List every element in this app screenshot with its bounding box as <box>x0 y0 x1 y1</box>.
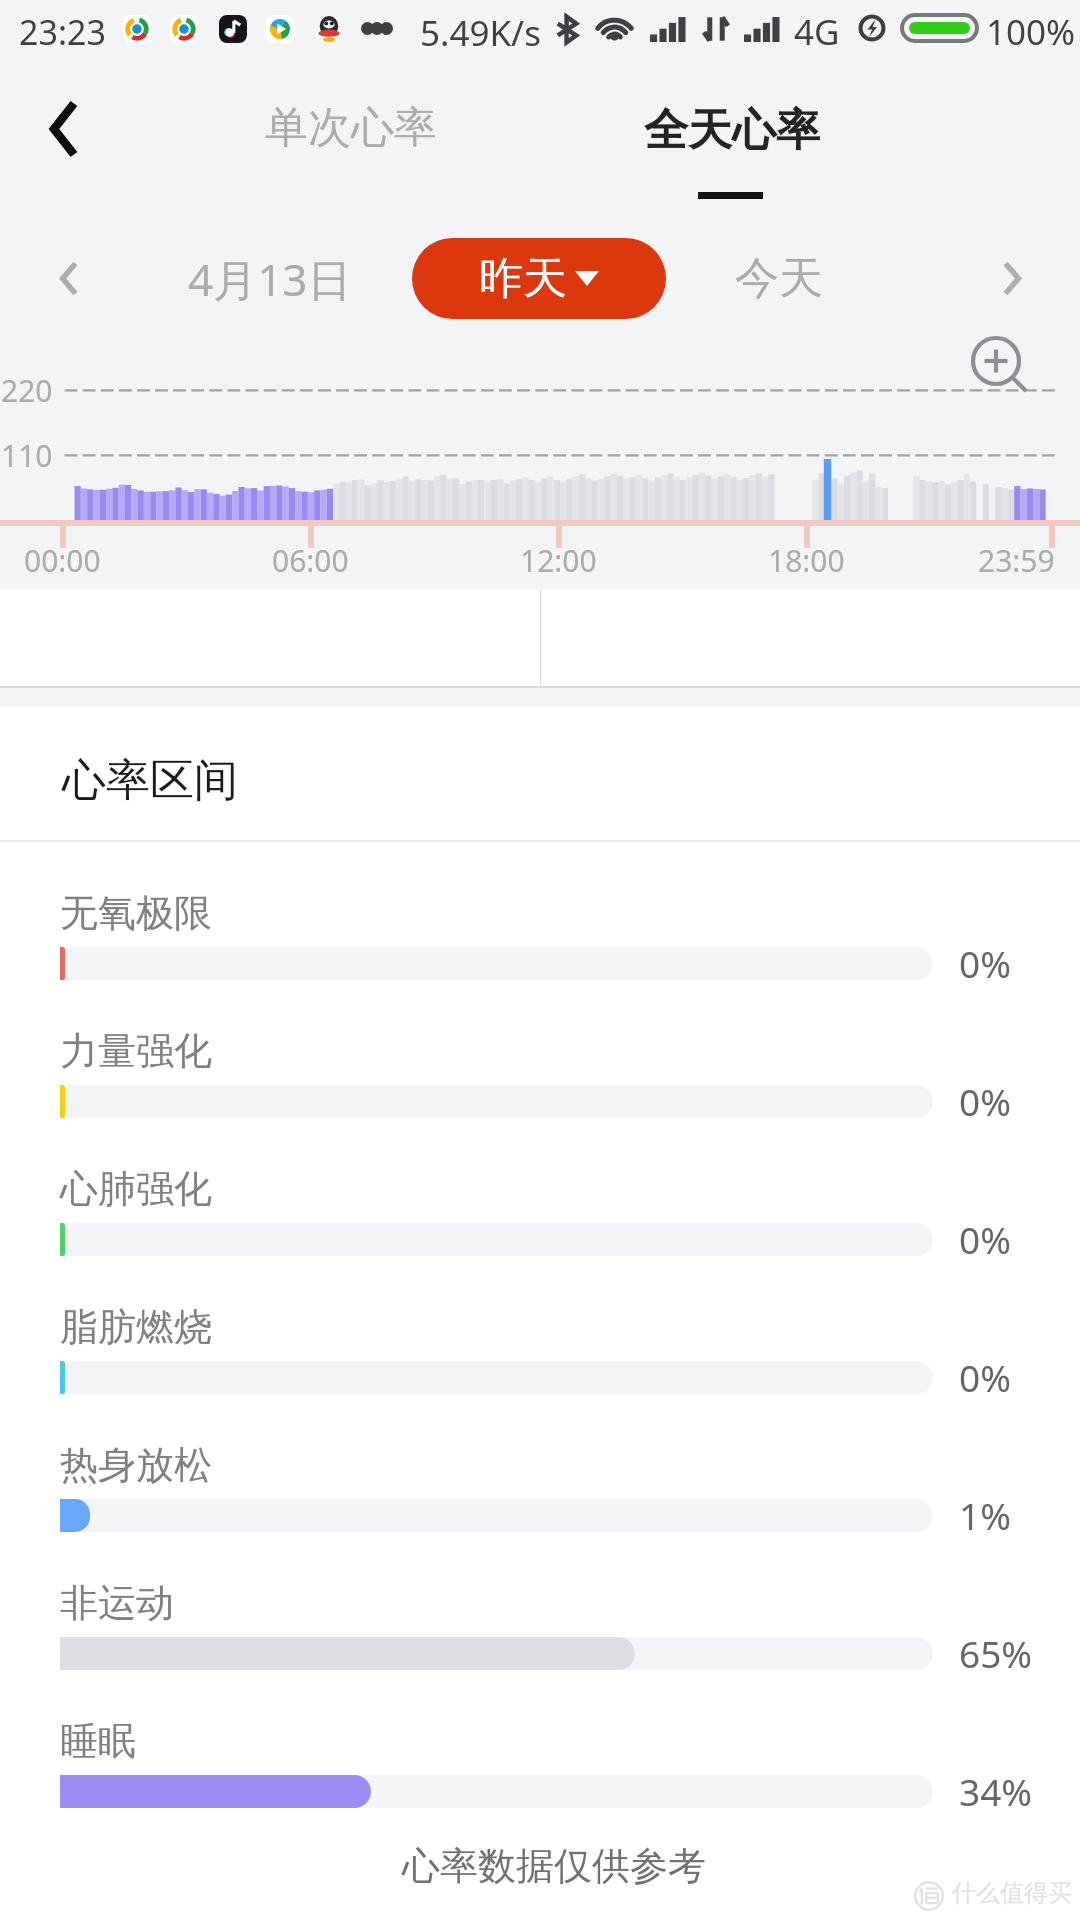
button[interactable]: Zoom in <box>948 313 1044 409</box>
button[interactable] <box>0 1573 1080 1683</box>
staticText: 100% <box>986 8 1076 56</box>
button[interactable]: 今天 <box>679 226 879 330</box>
staticText: 34% <box>959 1766 1033 1816</box>
button[interactable]: 4月13日 <box>150 227 390 331</box>
staticText: 心率数据仅供参考 <box>402 1842 706 1890</box>
staticText: 心肺强化 <box>60 1165 212 1213</box>
button[interactable]: Previous day <box>17 226 121 330</box>
staticText: 23:23 <box>19 9 106 55</box>
staticText: 今天 <box>735 251 823 306</box>
button[interactable] <box>0 707 1080 840</box>
button[interactable]: 昨天 <box>412 238 666 319</box>
staticText: 睡眠 <box>60 1717 136 1765</box>
staticText: 12:00 <box>520 540 597 581</box>
button[interactable]: Back <box>12 77 116 181</box>
button[interactable] <box>0 883 1080 993</box>
staticText: 0% <box>959 1214 1011 1264</box>
staticText: 4G <box>794 8 840 56</box>
staticText: 0% <box>959 1352 1011 1402</box>
staticText: 4月13日 <box>188 249 352 309</box>
staticText: 1% <box>959 1490 1011 1540</box>
button[interactable]: Next day <box>960 226 1064 330</box>
button[interactable] <box>0 1711 1080 1821</box>
staticText: 220 <box>1 370 53 411</box>
staticText: 热身放松 <box>60 1441 212 1489</box>
staticText: 心率区间 <box>62 753 238 808</box>
staticText: 非运动 <box>60 1579 174 1627</box>
staticText: 5.49K/s <box>420 9 541 57</box>
staticText: 脂肪燃烧 <box>60 1303 212 1351</box>
staticText: 什么值得买 <box>952 1878 1072 1908</box>
staticText: 110 <box>1 435 53 476</box>
staticText: 0% <box>959 938 1011 988</box>
staticText: 无氧极限 <box>60 889 212 937</box>
staticText: 18:00 <box>768 540 845 581</box>
staticText: 昨天 <box>479 251 567 306</box>
staticText: 力量强化 <box>60 1027 212 1075</box>
button[interactable] <box>0 1021 1080 1131</box>
button[interactable] <box>0 1435 1080 1545</box>
button[interactable] <box>0 1159 1080 1269</box>
staticText: 单次心率 <box>265 101 437 155</box>
button[interactable]: 单次心率 <box>231 72 471 184</box>
staticText: 00:00 <box>24 540 101 581</box>
staticText: 23:59 <box>978 540 1055 581</box>
button[interactable] <box>0 1297 1080 1407</box>
staticText: 06:00 <box>272 540 349 581</box>
staticText: 65% <box>959 1628 1033 1678</box>
button[interactable]: 全天心率 <box>612 74 852 186</box>
staticText: 0% <box>959 1076 1011 1126</box>
staticText: 全天心率 <box>644 103 820 158</box>
